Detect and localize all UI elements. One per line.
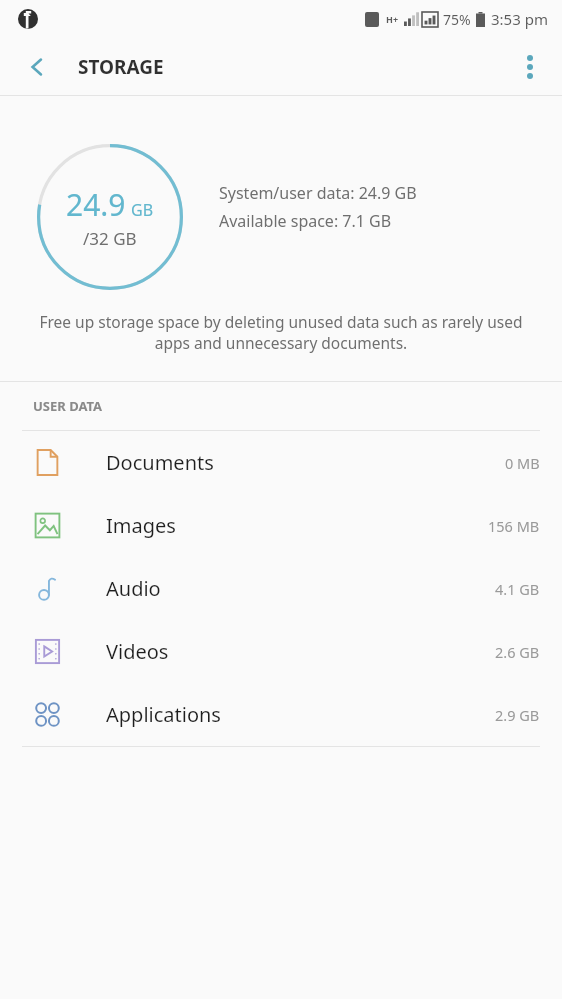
staticText: 3:53 pm [491, 9, 548, 29]
staticText: 4.1 GB [495, 579, 540, 599]
staticText: 2.9 GB [495, 705, 540, 725]
button[interactable]: Applications [0, 683, 562, 746]
staticText: Audio [106, 575, 161, 602]
staticText: System/user data: 24.9 GB [219, 182, 417, 204]
button[interactable]: More options [506, 43, 554, 91]
button[interactable]: Back [14, 44, 60, 90]
button[interactable]: Documents [0, 431, 562, 494]
staticText: 75% [443, 10, 471, 29]
staticText: 0 MB [505, 453, 540, 473]
button[interactable]: Images [0, 494, 562, 557]
button[interactable]: Videos [0, 620, 562, 683]
staticText: H+ [386, 13, 399, 25]
button[interactable]: Audio [0, 557, 562, 620]
staticText: Free up storage space by deleting unused… [36, 311, 526, 354]
staticText: Images [106, 512, 176, 539]
staticText: Documents [106, 449, 214, 476]
staticText: 2.6 GB [495, 642, 540, 662]
staticText: 24.9 [66, 184, 126, 225]
staticText: Applications [106, 701, 221, 728]
staticText: USER DATA [33, 397, 103, 415]
staticText: STORAGE [78, 54, 164, 80]
staticText: Available space: 7.1 GB [219, 210, 392, 232]
staticText: /32 GB [83, 227, 137, 250]
staticText: GB [131, 199, 154, 221]
staticText: Videos [106, 638, 169, 665]
staticText: 156 MB [488, 516, 540, 536]
